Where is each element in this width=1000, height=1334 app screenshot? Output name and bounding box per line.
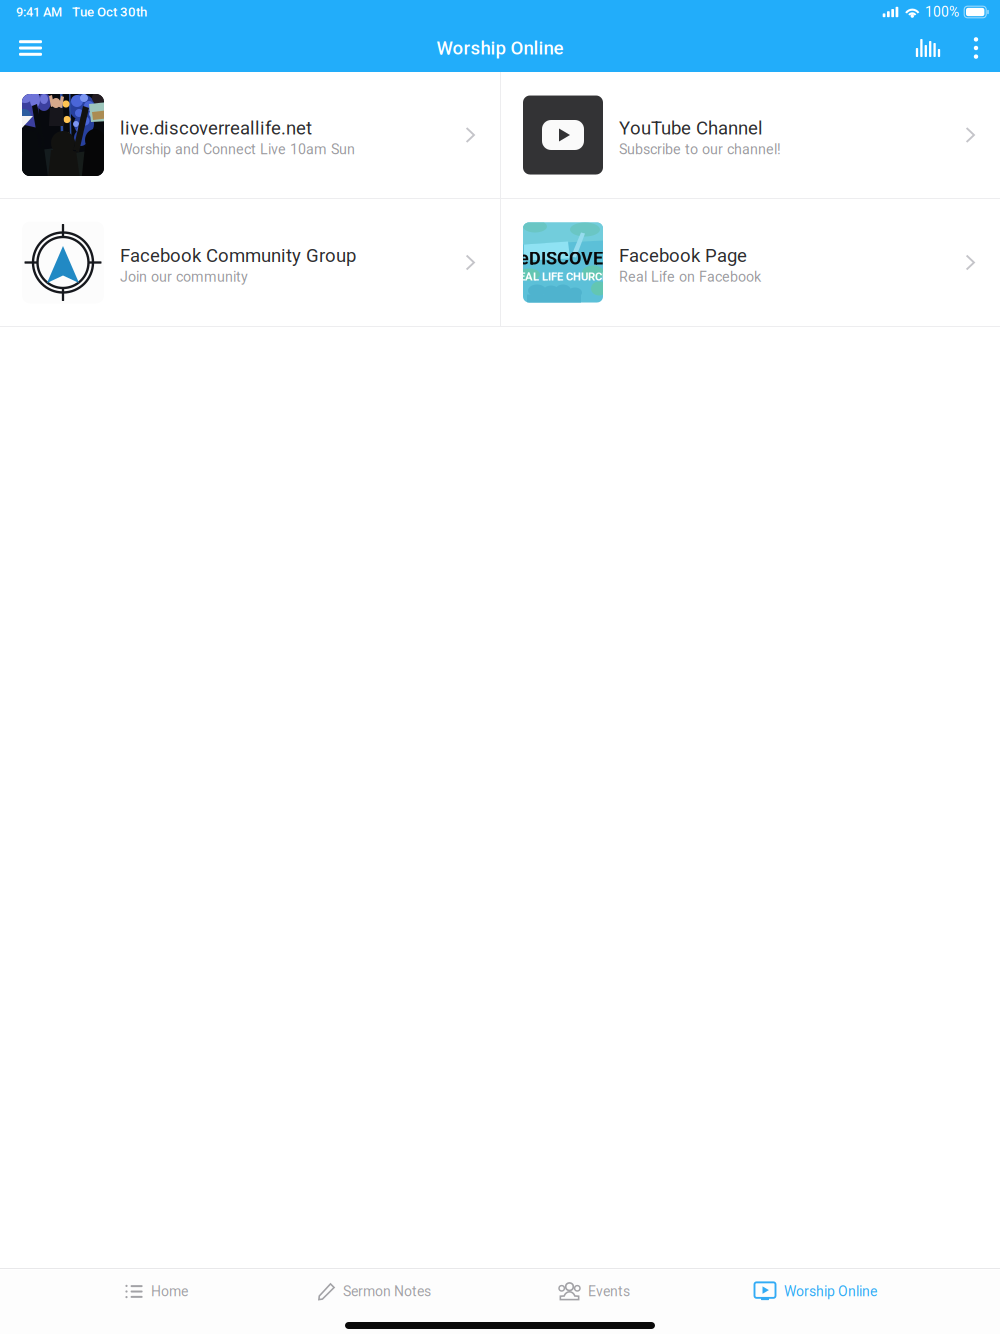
staticText: EAL LIFE CHURCH	[519, 270, 610, 283]
staticText: Events	[588, 1283, 630, 1300]
staticText: Worship Online	[436, 37, 563, 59]
button[interactable]: eDISCOVER	[501, 199, 1000, 326]
button[interactable]: Events	[547, 1269, 642, 1313]
button[interactable]: Menu	[0, 24, 60, 72]
button[interactable]: Now Playing	[901, 24, 955, 72]
staticText: Facebook Page	[619, 245, 747, 266]
staticText: Sermon Notes	[343, 1283, 431, 1300]
staticText: Join our community	[120, 268, 248, 285]
staticText: Home	[151, 1283, 188, 1300]
button[interactable]: More options	[955, 24, 1000, 72]
staticText: Subscribe to our channel!	[619, 141, 781, 158]
staticText: Worship Online	[784, 1283, 877, 1300]
staticText: 100%	[925, 4, 959, 20]
staticText: Tue Oct 30th	[72, 4, 147, 20]
staticText: YouTube Channel	[619, 117, 763, 139]
button[interactable]: Worship Online	[742, 1269, 889, 1313]
staticText: live.discoverreallife.net	[120, 117, 312, 139]
staticText: eDISCOVER	[519, 248, 615, 269]
staticText: Facebook Community Group	[120, 245, 356, 266]
staticText: Worship and Connect Live 10am Sun	[120, 141, 355, 158]
staticText: Real Life on Facebook	[619, 268, 761, 285]
button[interactable]: Sermon Notes	[306, 1269, 443, 1313]
button[interactable]: Facebook Community Group	[0, 199, 500, 326]
button[interactable]: live.discoverreallife.net	[0, 72, 500, 198]
staticText: 9:41 AM	[16, 4, 62, 19]
button[interactable]: Home	[113, 1269, 200, 1313]
button[interactable]: YouTube Channel	[501, 72, 1000, 198]
